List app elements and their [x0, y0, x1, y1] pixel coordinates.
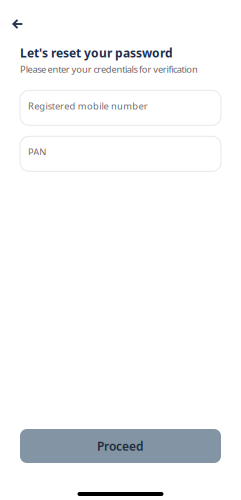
staticText: Let's reset your password: [20, 45, 173, 61]
staticText: Please enter your credentials for verifi…: [20, 63, 198, 75]
button[interactable]: Proceed: [20, 429, 221, 463]
staticText: PAN: [28, 146, 46, 158]
button[interactable]: PAN: [20, 136, 221, 171]
staticText: Registered mobile number: [28, 100, 147, 112]
staticText: Proceed: [97, 438, 144, 454]
button[interactable]: Registered mobile number: [20, 90, 221, 125]
button[interactable]: Back: [0, 12, 29, 36]
